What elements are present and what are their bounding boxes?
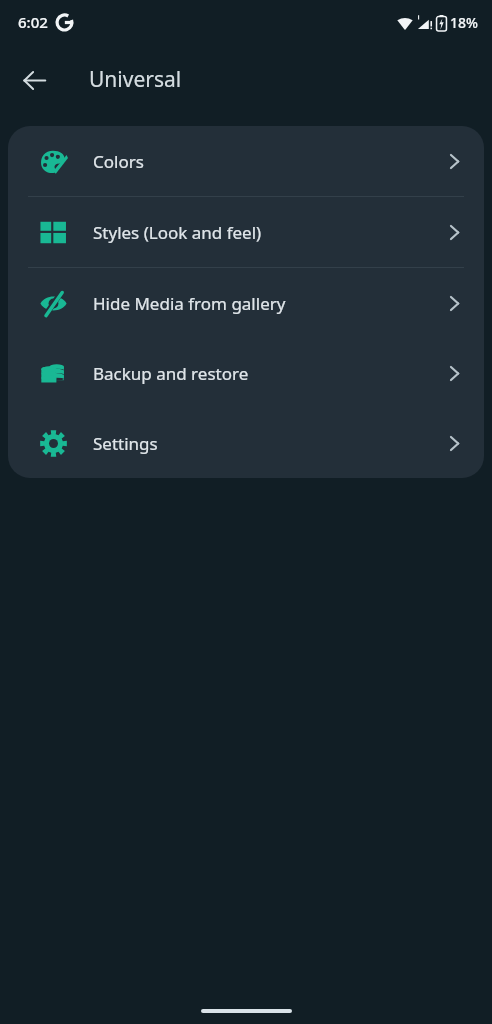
button[interactable]: Back bbox=[10, 56, 58, 104]
staticText: Colors bbox=[93, 150, 449, 173]
staticText: 18% bbox=[450, 13, 478, 32]
button[interactable]: Settings bbox=[8, 408, 484, 478]
button[interactable]: Styles (Look and feel) bbox=[8, 197, 484, 267]
staticText: Universal bbox=[89, 65, 182, 94]
staticText: Hide Media from gallery bbox=[93, 292, 449, 315]
button[interactable]: Backup and restore bbox=[8, 338, 484, 408]
staticText: Backup and restore bbox=[93, 362, 449, 385]
staticText: Styles (Look and feel) bbox=[93, 221, 449, 244]
button[interactable]: Colors bbox=[8, 126, 484, 196]
staticText: 6:02 bbox=[18, 12, 48, 32]
button[interactable]: Hide Media from gallery bbox=[8, 268, 484, 338]
staticText: Settings bbox=[93, 432, 449, 455]
